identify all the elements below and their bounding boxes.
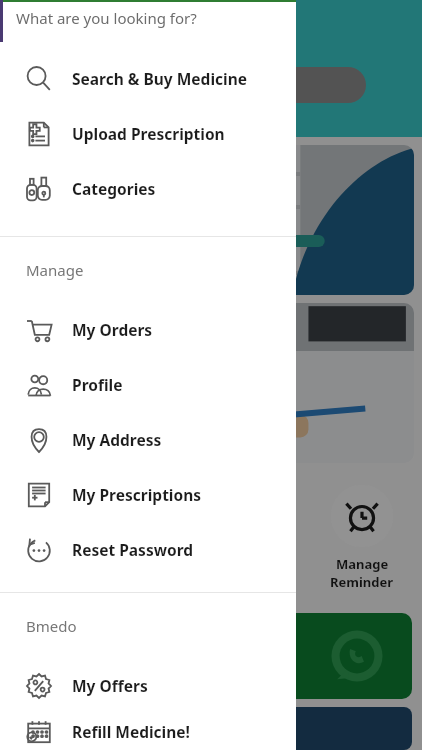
button[interactable]: Refill Medicine! [0,713,296,750]
button[interactable]: My Offers [0,658,296,713]
button[interactable]: Search & Buy Medicine [0,51,296,106]
staticText: My Offers [72,675,148,696]
button[interactable] [8,303,414,463]
staticText: Search & Buy Medicine [72,68,247,89]
staticText: What are you looking for? [16,8,197,28]
button[interactable]: My Orders [0,302,296,357]
button[interactable]: Manage [302,485,422,591]
staticText: My Orders [72,319,153,340]
button[interactable]: Reset Password [0,522,296,577]
button[interactable]: My Prescriptions [0,467,296,522]
staticText: Upload Prescription [72,123,225,144]
button[interactable] [8,145,414,295]
button[interactable]: Upload Prescription [0,106,296,161]
staticText: Categories [72,178,156,199]
button[interactable]: Search medicine and otc ... [20,67,366,103]
button[interactable]: Order on WhatsApp [10,613,412,699]
staticText: Manage [26,260,84,280]
staticText: My Prescriptions [72,484,202,505]
staticText: Reset Password [72,539,194,560]
staticText: Manage [336,555,389,573]
staticText: Refill Medicine! [72,721,190,742]
staticText: Search medicine and otc ... [34,76,210,95]
button[interactable]: Profile [0,357,296,412]
button[interactable]: My Address [0,412,296,467]
staticText: Bmedo [26,616,77,636]
staticText: Reminder [330,573,394,591]
button[interactable]: Categories [0,161,296,216]
staticText: Profile [72,374,123,395]
staticText: My Address [72,429,162,450]
